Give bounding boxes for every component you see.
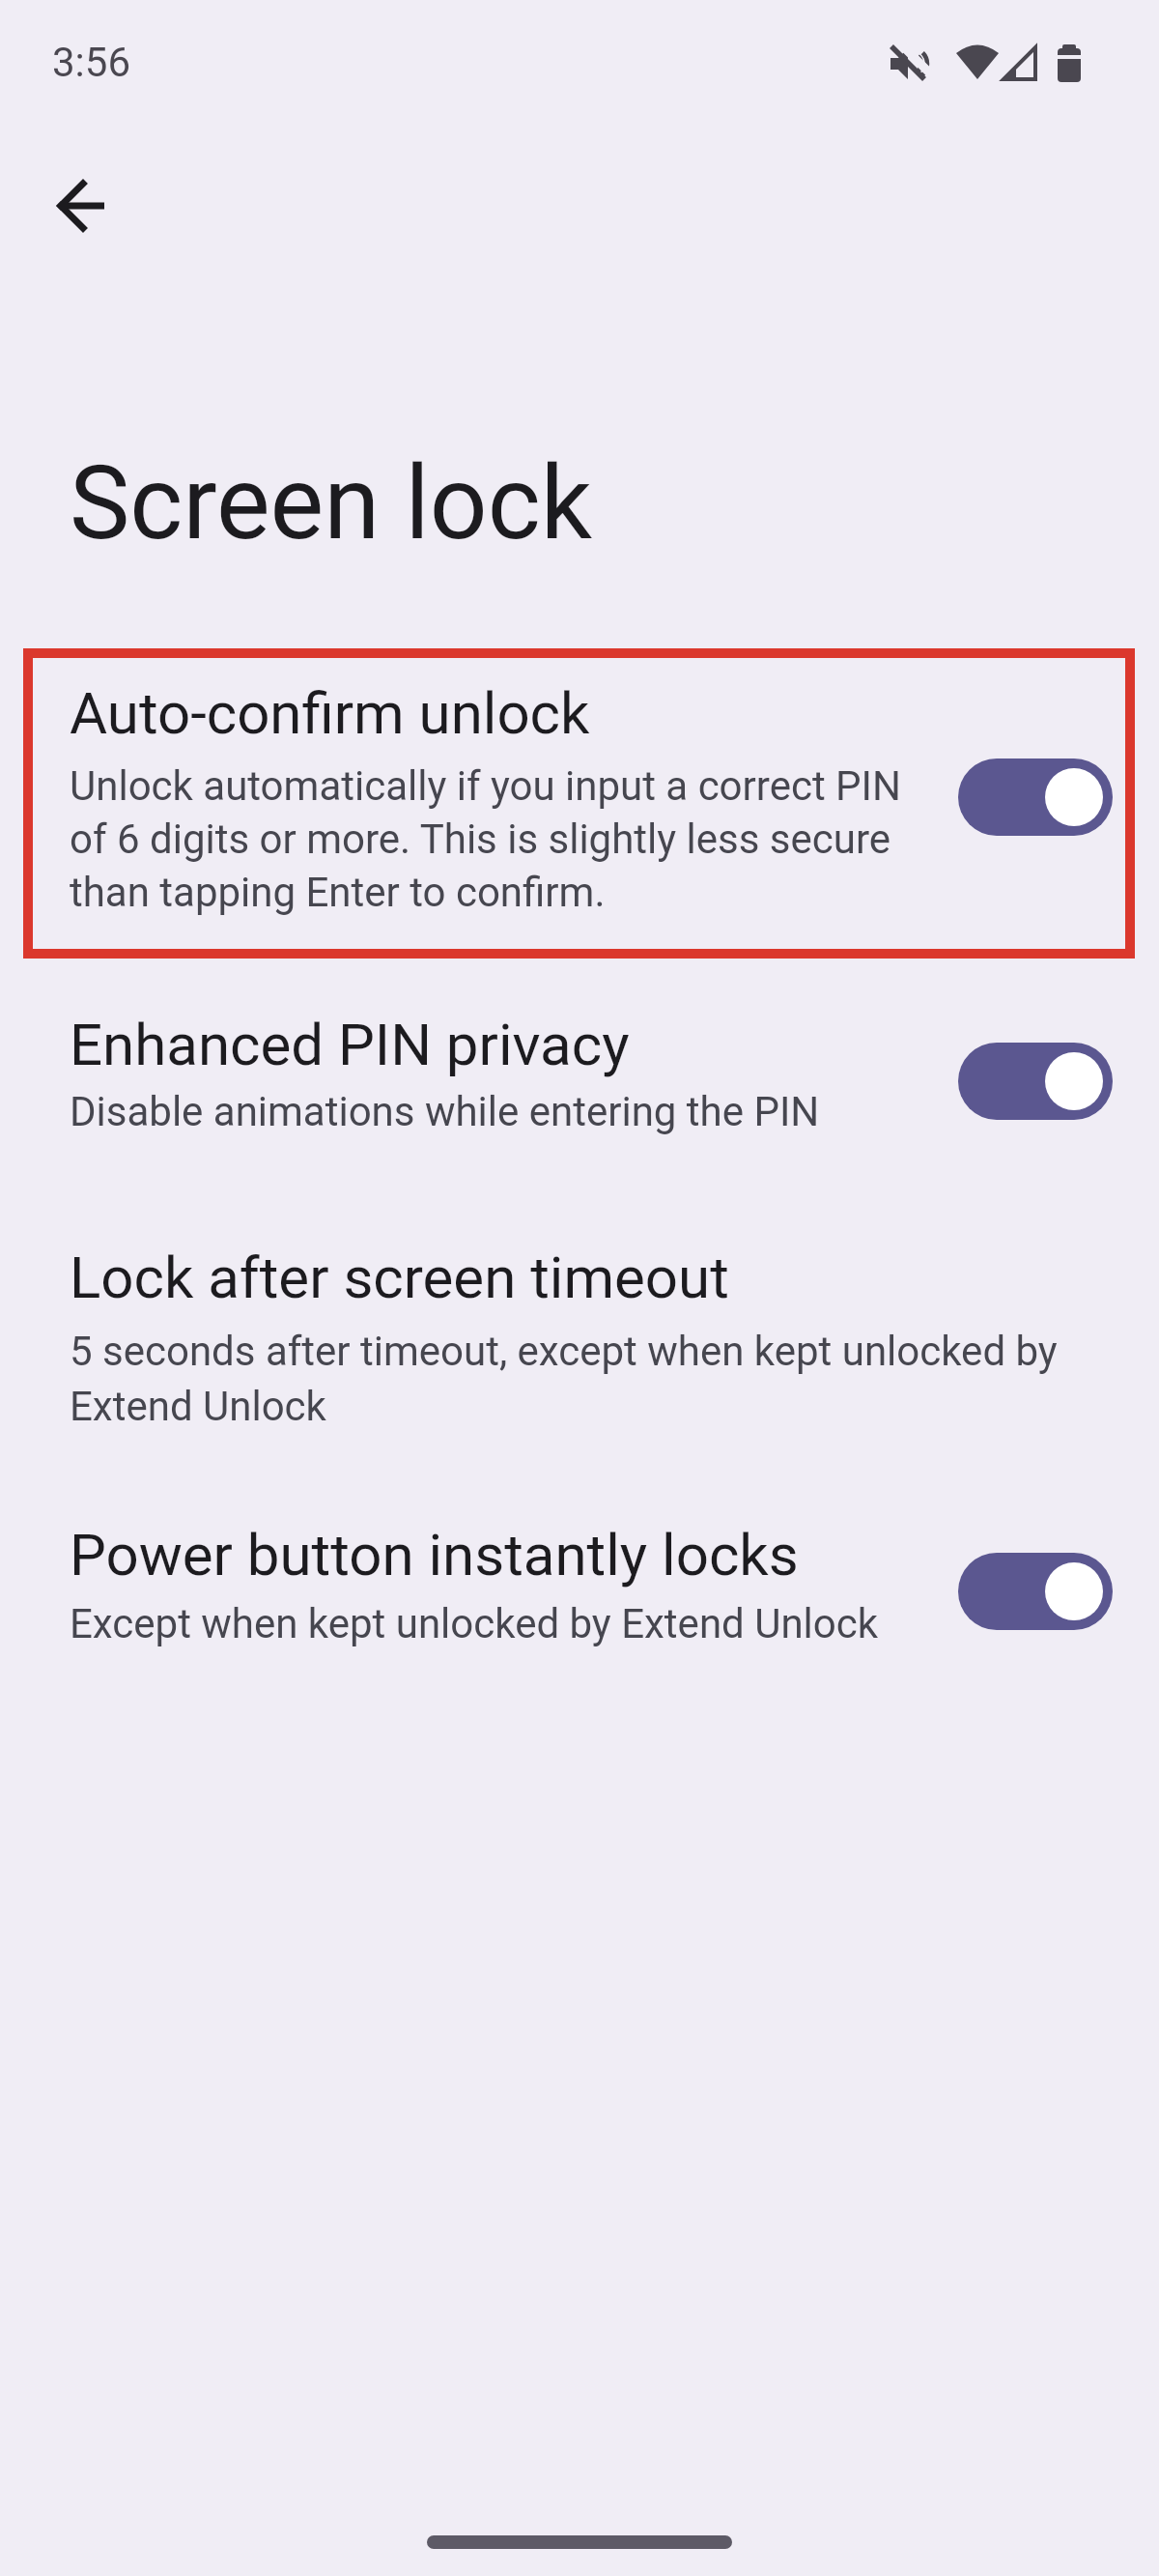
staticText: Enhanced PIN privacy: [70, 1011, 630, 1078]
staticText: than tapping Enter to confirm.: [70, 869, 606, 916]
staticText: Screen lock: [70, 444, 592, 563]
staticText: Auto-confirm unlock: [70, 679, 590, 747]
button[interactable]: [958, 1553, 1113, 1630]
button[interactable]: [958, 758, 1113, 836]
button[interactable]: Enhanced PIN privacy: [0, 1005, 1159, 1169]
staticText: Extend Unlock: [70, 1383, 326, 1430]
button[interactable]: Power button instantly locks: [0, 1507, 1159, 1681]
staticText: Lock after screen timeout: [70, 1244, 729, 1311]
button[interactable]: Lock after screen timeout: [0, 1237, 1159, 1459]
button[interactable]: [37, 159, 129, 252]
staticText: Disable animations while entering the PI…: [70, 1088, 820, 1135]
button[interactable]: [958, 1043, 1113, 1120]
button[interactable]: Auto-confirm unlock: [0, 658, 1159, 949]
staticText: of 6 digits or more. This is slightly le…: [70, 816, 891, 863]
staticText: Except when kept unlocked by Extend Unlo…: [70, 1600, 879, 1647]
staticText: 3:56: [52, 39, 130, 86]
staticText: Power button instantly locks: [70, 1521, 799, 1589]
staticText: Unlock automatically if you input a corr…: [70, 762, 901, 810]
staticText: 5 seconds after timeout, except when kep…: [70, 1328, 1058, 1375]
